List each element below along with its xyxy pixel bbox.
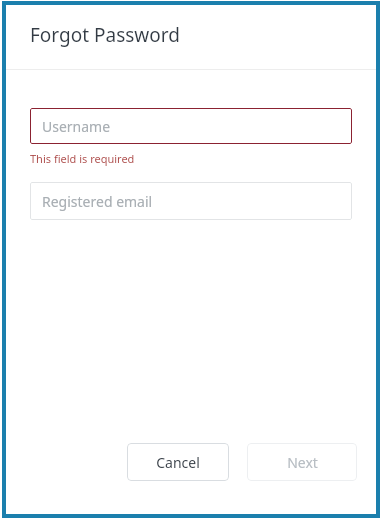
staticText: Registered email bbox=[42, 192, 153, 211]
staticText: Forgot Password bbox=[30, 22, 180, 48]
button[interactable]: Registered email bbox=[30, 182, 352, 220]
button[interactable]: Next bbox=[247, 443, 357, 481]
staticText: Cancel bbox=[156, 453, 200, 472]
staticText: Next bbox=[287, 453, 318, 472]
button[interactable]: Username bbox=[30, 108, 352, 144]
staticText: This field is required bbox=[30, 151, 135, 166]
button[interactable]: Cancel bbox=[127, 443, 229, 481]
staticText: Username bbox=[42, 117, 111, 136]
